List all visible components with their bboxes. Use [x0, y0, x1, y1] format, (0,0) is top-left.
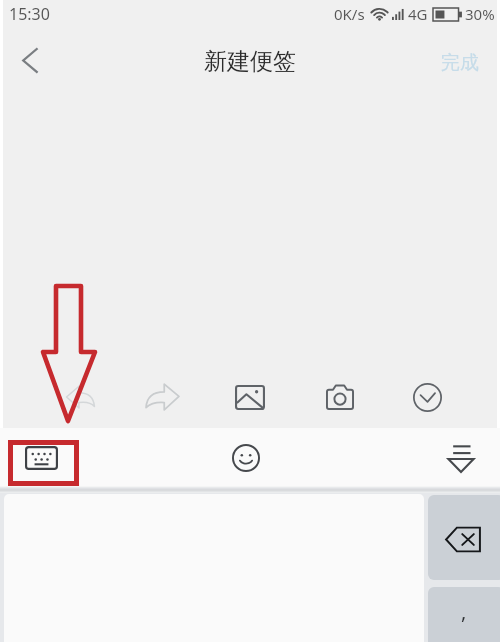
- staticText: 0K/s: [334, 4, 365, 24]
- staticText: 30%: [465, 4, 495, 24]
- staticText: 新建便签: [204, 47, 296, 76]
- button[interactable]: 完成: [422, 30, 500, 94]
- button[interactable]: Camera: [316, 374, 364, 420]
- button[interactable]: Emoji: [222, 434, 270, 482]
- staticText: 4G: [408, 4, 428, 24]
- button[interactable]: Undo: [56, 374, 104, 420]
- button[interactable]: Comma: [428, 587, 500, 642]
- button[interactable]: Redo: [138, 374, 186, 420]
- button[interactable]: Hide keyboard: [437, 434, 485, 482]
- button[interactable]: Confirm: [403, 374, 451, 420]
- staticText: ,: [461, 598, 467, 625]
- button[interactable]: Keyboard: [16, 433, 66, 483]
- staticText: 完成: [441, 51, 479, 75]
- button[interactable]: Insert image: [226, 374, 274, 420]
- staticText: 15:30: [9, 3, 50, 25]
- button[interactable]: Back: [0, 32, 60, 92]
- button[interactable]: Backspace: [428, 495, 500, 580]
